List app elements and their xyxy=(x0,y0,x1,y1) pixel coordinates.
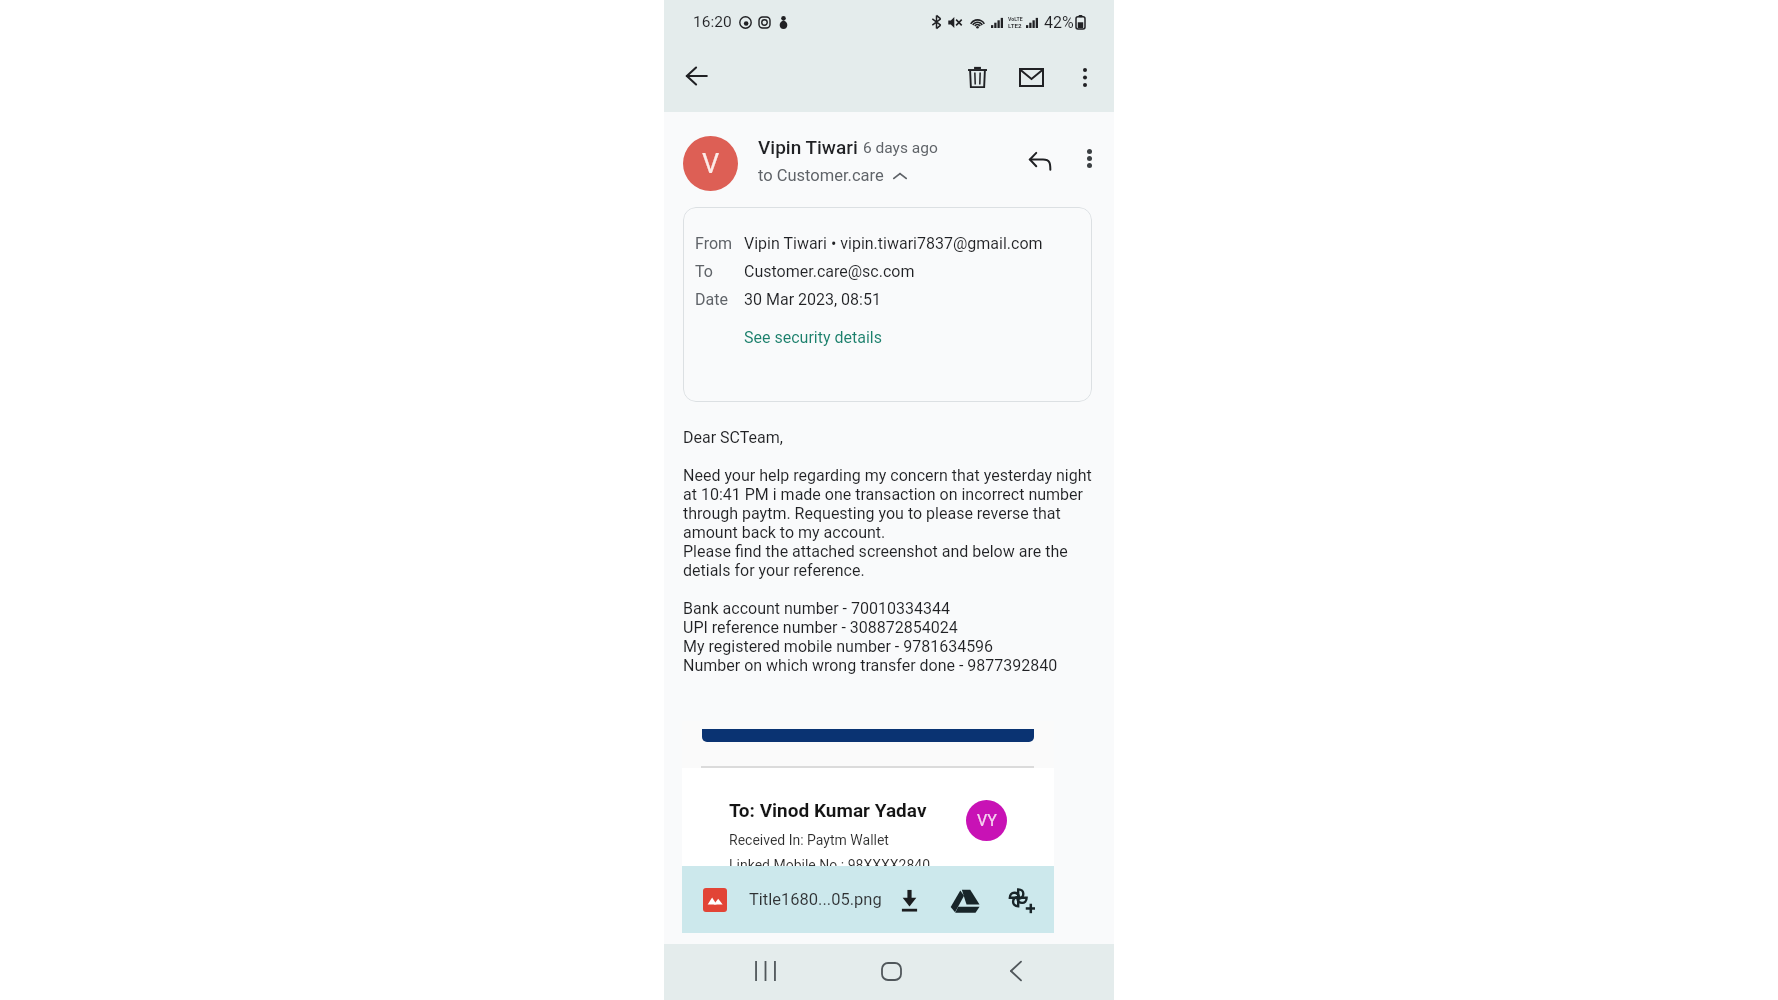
button[interactable]: Recents xyxy=(738,944,792,998)
staticText: Date xyxy=(695,290,744,309)
button[interactable]: Attachment preview, Title1680...05.png xyxy=(682,721,1054,866)
button[interactable]: Download xyxy=(890,881,928,919)
button[interactable]: Save to Drive xyxy=(945,881,983,919)
staticText: VY xyxy=(977,811,997,830)
staticText: Title1680...05.png xyxy=(749,890,890,909)
staticText: From xyxy=(695,234,744,253)
staticText: 42% xyxy=(1044,13,1074,32)
button[interactable]: Mark as unread xyxy=(1008,54,1054,100)
button[interactable]: Back xyxy=(989,944,1043,998)
button[interactable]: Title1680...05.png xyxy=(682,866,1054,933)
staticText: Number on which wrong transfer done - 98… xyxy=(683,656,1058,675)
button[interactable]: to Customer.care xyxy=(758,166,907,185)
staticText: to Customer.care xyxy=(758,166,884,185)
staticText: Received In: Paytm Wallet xyxy=(729,832,889,848)
staticText: 16:20 xyxy=(693,13,732,31)
staticText: Vipin Tiwari • vipin.tiwari7837@gmail.co… xyxy=(744,234,1043,253)
staticText: V xyxy=(702,148,720,180)
button[interactable]: More options xyxy=(1070,139,1108,177)
button[interactable]: See security details xyxy=(744,328,882,347)
button[interactable]: Home xyxy=(864,944,918,998)
button[interactable]: Sender avatar, Vipin Tiwari xyxy=(683,136,738,191)
button[interactable]: Save to Photos xyxy=(1002,881,1040,919)
staticText: Vipin Tiwari xyxy=(758,136,858,158)
staticText: Customer.care@sc.com xyxy=(744,262,915,281)
staticText: 30 Mar 2023, 08:51 xyxy=(744,290,881,309)
staticText: To xyxy=(695,262,744,281)
staticText: VoLTE xyxy=(1008,16,1023,22)
staticText: Bank account number - 70010334344 xyxy=(683,599,950,618)
staticText: My registered mobile number - 9781634596 xyxy=(683,637,994,656)
button[interactable]: Back xyxy=(672,52,720,100)
staticText: Need your help regarding my concern that… xyxy=(683,466,1098,542)
staticText: 6 days ago xyxy=(863,139,938,157)
staticText: To: Vinod Kumar Yadav xyxy=(729,799,927,821)
button[interactable]: Reply xyxy=(1018,139,1062,183)
staticText: UPI reference number - 308872854024 xyxy=(683,618,958,637)
button[interactable]: More options xyxy=(1064,56,1106,98)
staticText: Dear SCTeam, xyxy=(683,428,783,447)
button[interactable]: Delete xyxy=(954,54,1000,100)
staticText: Please find the attached screenshot and … xyxy=(683,542,1098,580)
staticText: Linked Mobile No.: 98XXXX2840 xyxy=(729,857,931,866)
staticText: LTE2 xyxy=(1008,22,1022,29)
